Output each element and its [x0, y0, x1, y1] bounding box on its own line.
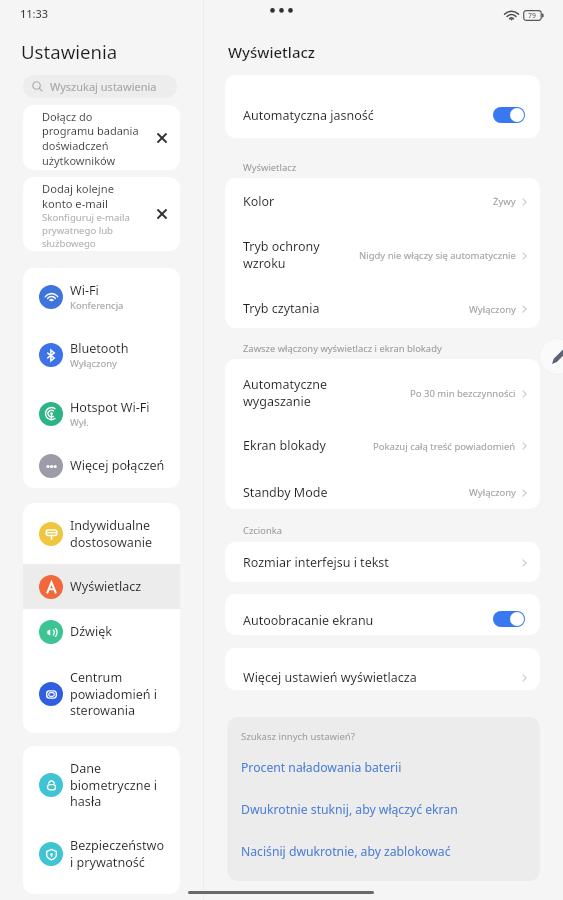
- staticText: Wyłączony: [469, 303, 516, 316]
- staticText: Więcej połączeń: [70, 457, 172, 474]
- staticText: Wyszukaj ustawienia: [50, 79, 157, 94]
- staticText: Kolor: [243, 193, 353, 210]
- button[interactable]: Dismiss: [147, 123, 177, 153]
- staticText: Dołącz do programu badania doświadczeń u…: [42, 109, 140, 169]
- staticText: Czcionka: [243, 524, 283, 537]
- staticText: Ustawienia: [21, 39, 118, 64]
- staticText: Konferencja: [70, 299, 124, 312]
- staticText: Skonfiguruj e-maila prywatnego lub służb…: [42, 211, 140, 250]
- staticText: 79: [528, 11, 537, 21]
- staticText: Automatyczne wygaszanie: [243, 376, 353, 410]
- button[interactable]: Kolor: [225, 178, 540, 231]
- staticText: Zawsze włączony wyświetlacz i ekran blok…: [243, 342, 442, 355]
- button[interactable]: Rozmiar interfejsu i tekst: [225, 542, 540, 582]
- staticText: Żywy: [493, 195, 516, 208]
- staticText: Tryb czytania: [243, 300, 353, 317]
- button[interactable]: Ekran blokady: [225, 415, 540, 465]
- staticText: Centrum powiadomień i sterowania: [70, 669, 172, 719]
- staticText: Szukasz innych ustawień?: [241, 730, 355, 743]
- button[interactable]: Dismiss: [147, 199, 177, 229]
- staticText: Wi-Fi: [70, 282, 172, 299]
- button[interactable]: Naciśnij dwukrotnie, aby zablokować: [227, 830, 540, 868]
- button[interactable]: Wyświetlacz: [23, 564, 180, 609]
- button[interactable]: Dźwięk: [23, 609, 180, 654]
- staticText: Dźwięk: [70, 623, 172, 640]
- staticText: Po 30 min bezczynności: [410, 387, 516, 400]
- staticText: Wyłączony: [70, 357, 117, 370]
- button[interactable]: Edit: [539, 338, 563, 375]
- staticText: Dwukrotnie stuknij, aby włączyć ekran: [241, 801, 458, 818]
- staticText: Bluetooth: [70, 340, 172, 357]
- button[interactable]: Indywidualne dostosowanie: [23, 503, 180, 564]
- button[interactable]: Dane biometryczne i hasła: [23, 746, 180, 824]
- staticText: Dodaj kolejne konto e-mail: [42, 181, 140, 211]
- staticText: Dane biometryczne i hasła: [70, 760, 172, 810]
- staticText: Naciśnij dwukrotnie, aby zablokować: [241, 843, 451, 860]
- staticText: Bezpieczeństwo i prywatność: [70, 837, 166, 871]
- staticText: Procent naładowania baterii: [241, 759, 402, 776]
- staticText: Automatyczna jasność: [243, 107, 374, 124]
- staticText: Wyłączony: [469, 486, 516, 499]
- button[interactable]: Automatyczne wygaszanie: [225, 359, 540, 415]
- button[interactable]: Automatyczna jasność: [225, 75, 540, 138]
- staticText: Autoobracanie ekranu: [243, 612, 374, 629]
- button[interactable]: Bezpieczeństwo i prywatność: [23, 824, 180, 884]
- button[interactable]: Więcej ustawień wyświetlacza: [225, 648, 540, 690]
- staticText: Tryb ochrony wzroku: [243, 238, 353, 272]
- button[interactable]: Tryb czytania: [225, 288, 540, 328]
- button[interactable]: Centrum powiadomień i sterowania: [23, 654, 180, 733]
- staticText: 11:33: [20, 6, 49, 21]
- staticText: Hotspot Wi-Fi: [70, 399, 172, 416]
- staticText: Pokazuj całą treść powiadomień: [373, 440, 516, 453]
- button[interactable]: Autoobracanie ekranu: [225, 594, 540, 635]
- button[interactable]: Więcej połączeń: [23, 443, 180, 488]
- button[interactable]: Hotspot Wi-Fi: [23, 384, 180, 443]
- staticText: Standby Mode: [243, 484, 353, 501]
- button[interactable]: Dwukrotnie stuknij, aby włączyć ekran: [227, 788, 540, 826]
- staticText: Indywidualne dostosowanie: [70, 517, 172, 551]
- button[interactable]: Standby Mode: [225, 465, 540, 509]
- button[interactable]: Dodaj kolejne konto e-mail: [23, 177, 180, 251]
- staticText: Rozmiar interfejsu i tekst: [243, 554, 443, 571]
- staticText: Wyświetlacz: [228, 42, 315, 62]
- staticText: Ekran blokady: [243, 437, 353, 454]
- button[interactable]: Procent naładowania baterii: [227, 746, 540, 784]
- button[interactable]: Wi-Fi: [23, 268, 180, 325]
- staticText: Wyświetlacz: [70, 578, 172, 595]
- staticText: Więcej ustawień wyświetlacza: [243, 669, 463, 686]
- staticText: Nigdy nie włączy się automatycznie: [359, 249, 516, 262]
- staticText: Wyświetlacz: [243, 161, 297, 174]
- button[interactable]: Tryb ochrony wzroku: [225, 231, 540, 288]
- button[interactable]: Wyszukaj ustawienia: [23, 75, 177, 98]
- staticText: Wył.: [70, 416, 89, 429]
- button[interactable]: Dołącz do programu badania doświadczeń u…: [23, 105, 180, 170]
- button[interactable]: Bluetooth: [23, 325, 180, 384]
